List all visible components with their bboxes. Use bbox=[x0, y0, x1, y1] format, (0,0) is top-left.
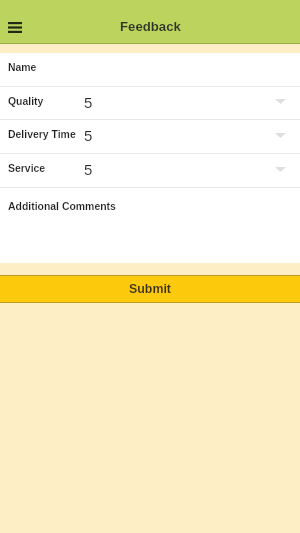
button[interactable]: Name bbox=[0, 53, 300, 86]
staticText: 5 bbox=[84, 94, 93, 111]
staticText: Quality bbox=[8, 96, 44, 108]
button[interactable]: Menu bbox=[1, 16, 29, 38]
staticText: 5 bbox=[84, 127, 93, 144]
button[interactable]: Quality bbox=[0, 87, 300, 119]
button[interactable]: Delivery Time bbox=[0, 120, 300, 153]
staticText: Feedback bbox=[120, 19, 181, 34]
staticText: Name bbox=[8, 62, 37, 74]
button[interactable]: Submit bbox=[0, 275, 300, 303]
staticText: 5 bbox=[84, 161, 93, 178]
button[interactable]: Additional Comments bbox=[0, 188, 300, 229]
staticText: Service bbox=[8, 163, 46, 175]
staticText: Submit bbox=[129, 282, 171, 296]
staticText: Additional Comments bbox=[8, 201, 116, 213]
button[interactable]: Service bbox=[0, 154, 300, 187]
staticText: Delivery Time bbox=[8, 129, 76, 141]
